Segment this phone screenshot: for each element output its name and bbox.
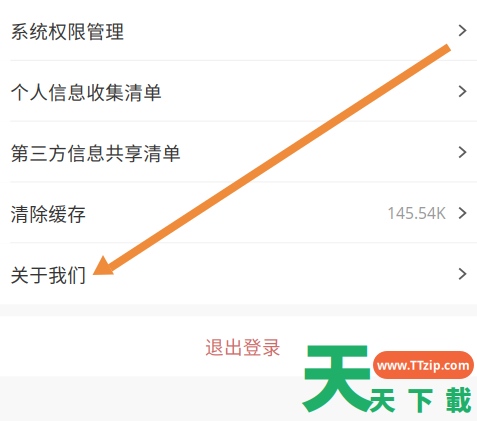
staticText: 系统权限管理 bbox=[10, 17, 124, 44]
button[interactable]: 退出登录 bbox=[0, 316, 477, 376]
button[interactable]: 清除缓存 bbox=[0, 183, 477, 243]
button[interactable]: 个人信息收集清单 bbox=[0, 61, 477, 122]
staticText: 关于我们 bbox=[10, 260, 86, 287]
staticText: 天 bbox=[300, 319, 375, 421]
staticText: 清除缓存 bbox=[10, 199, 86, 226]
button[interactable]: 系统权限管理 bbox=[0, 0, 477, 61]
staticText: www.TTzip.com bbox=[377, 357, 470, 373]
staticText: 下 bbox=[407, 379, 434, 418]
staticText: 第三方信息共享清单 bbox=[10, 139, 181, 166]
staticText: 145.54K bbox=[387, 202, 446, 224]
button[interactable]: 关于我们 bbox=[0, 243, 477, 304]
button[interactable]: 第三方信息共享清单 bbox=[0, 122, 477, 183]
staticText: 退出登录 bbox=[205, 333, 281, 360]
staticText: 个人信息收集清单 bbox=[10, 78, 162, 105]
staticText: 載 bbox=[445, 379, 472, 418]
staticText: 天 bbox=[369, 379, 396, 418]
